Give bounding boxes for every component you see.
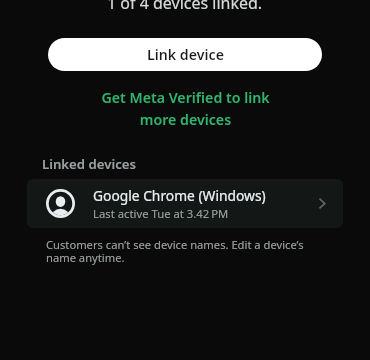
staticText: Get Meta Verified to link more devices bbox=[101, 88, 270, 129]
other: Open device details bbox=[318, 197, 326, 210]
staticText: Link device bbox=[147, 45, 224, 64]
button[interactable]: Get Meta Verified to link more devices bbox=[101, 88, 270, 129]
staticText: 1 of 4 devices linked. bbox=[107, 0, 263, 14]
staticText: Last active Tue at 3.42 PM bbox=[93, 206, 229, 221]
staticText: Linked devices bbox=[42, 155, 136, 173]
staticText: Customers can’t see device names. Edit a… bbox=[46, 237, 304, 265]
staticText: Google Chrome (Windows) bbox=[93, 186, 266, 205]
button[interactable]: Link device bbox=[48, 38, 322, 71]
button[interactable]: Google Chrome (Windows) bbox=[27, 179, 343, 228]
